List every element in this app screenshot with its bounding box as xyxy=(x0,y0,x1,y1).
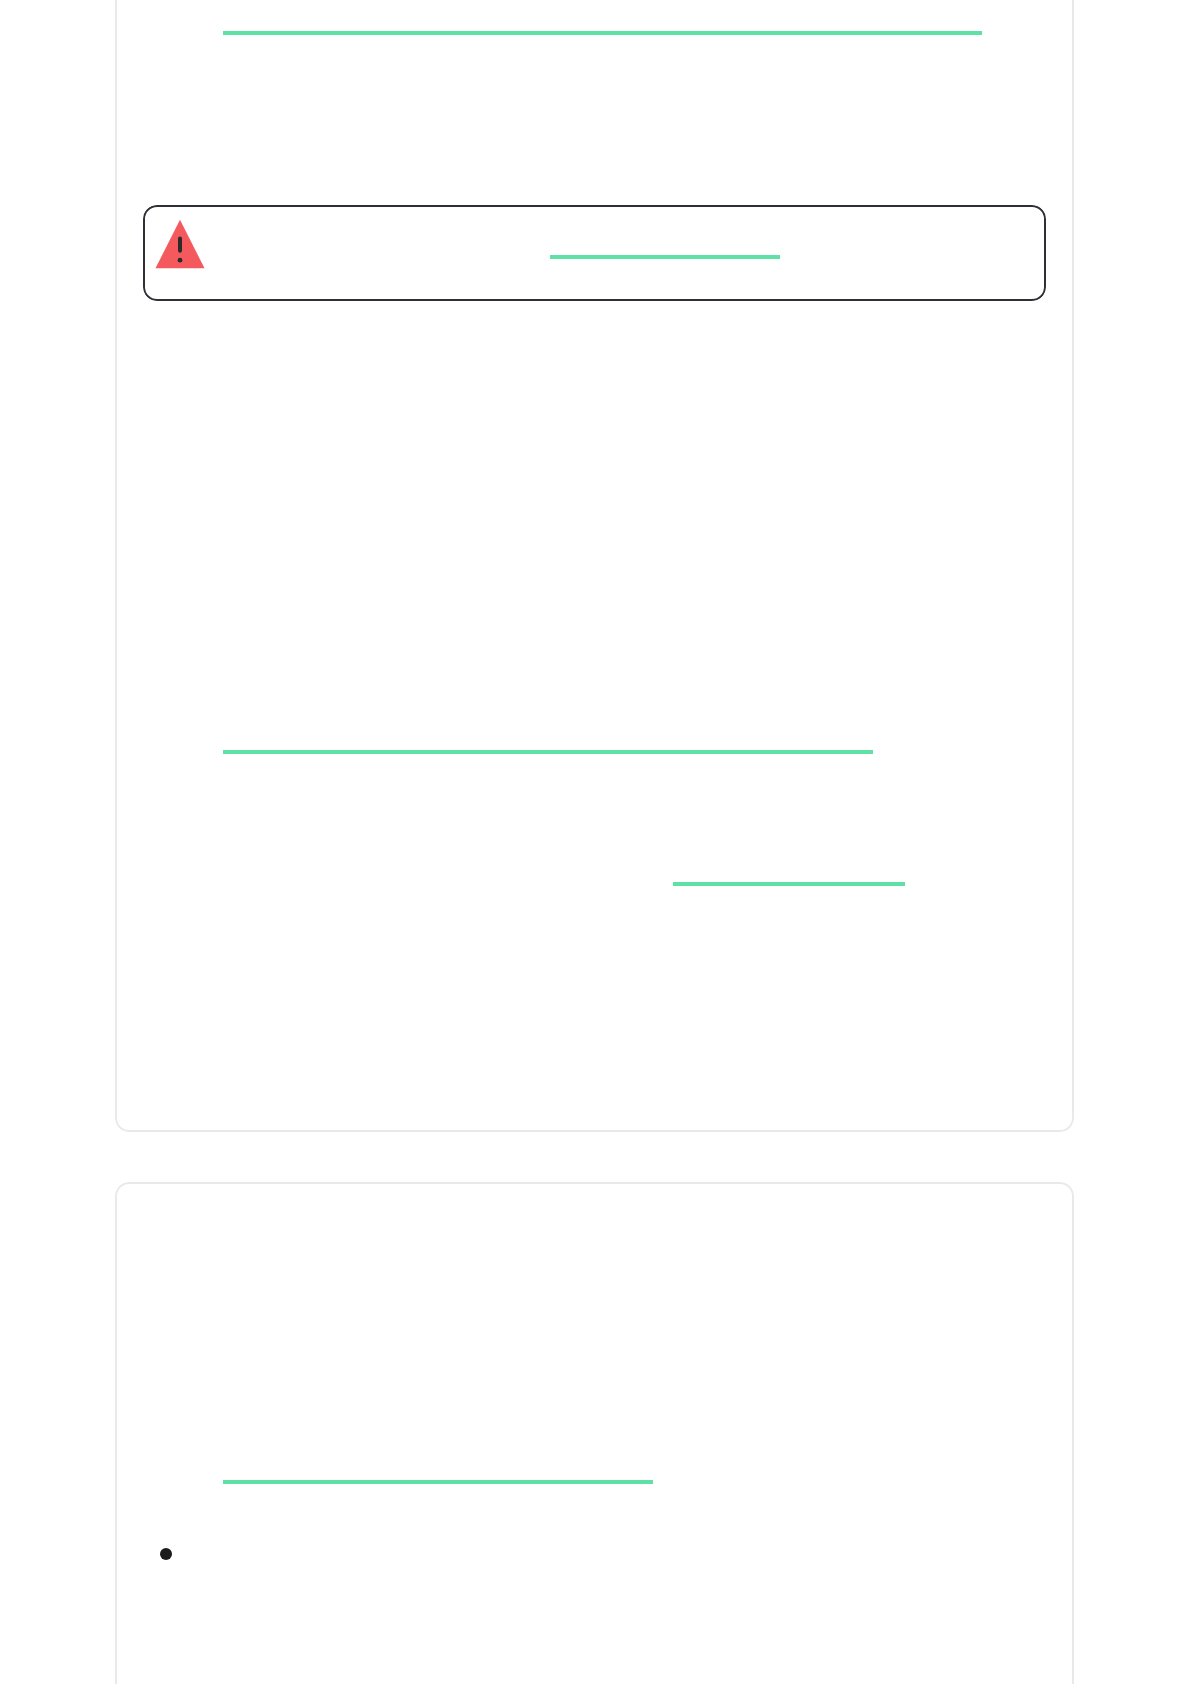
button[interactable] xyxy=(115,1182,1074,1684)
other: Warning xyxy=(155,217,205,271)
button[interactable]: Warning xyxy=(143,205,1046,301)
button[interactable] xyxy=(115,0,1074,1132)
